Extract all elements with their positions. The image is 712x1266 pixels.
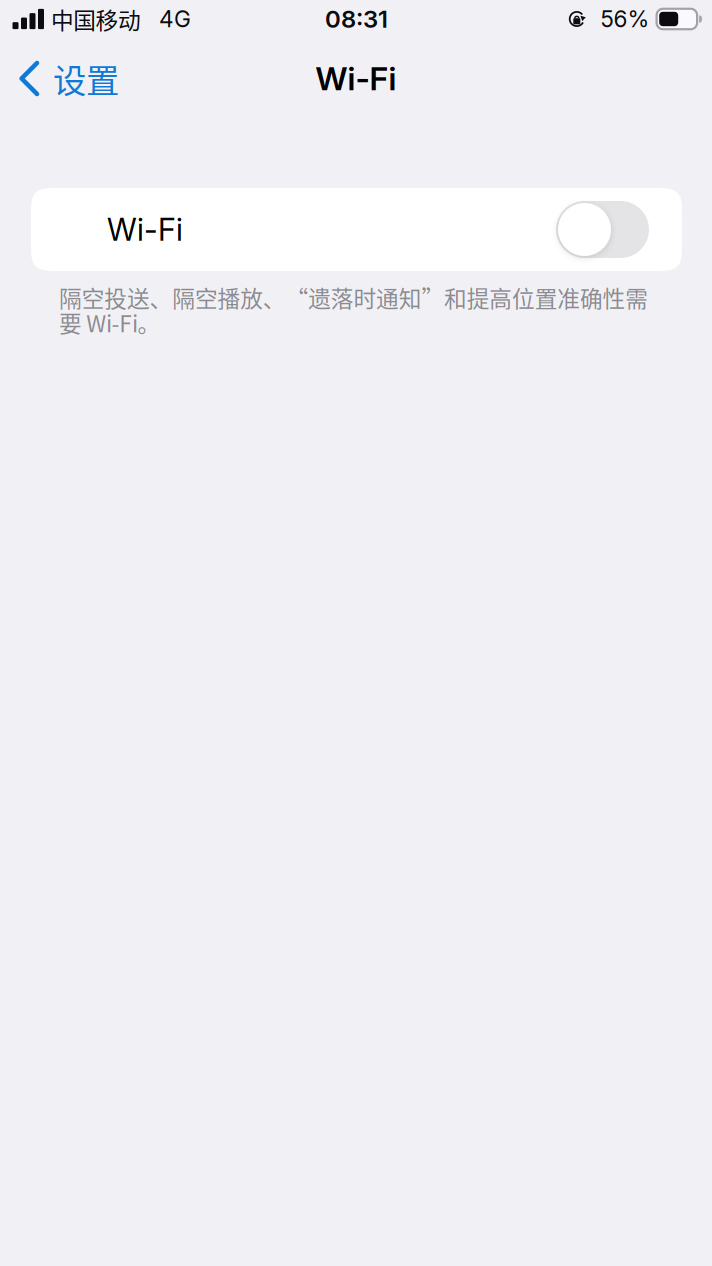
staticText: 56% — [601, 5, 650, 33]
staticText: 隔空投送、隔空播放、“遗落时通知”和提高位置准确性需要 Wi-Fi。 — [59, 285, 648, 335]
staticText: 4G — [159, 5, 191, 33]
button[interactable]: 设置 — [0, 50, 131, 106]
staticText: 设置 — [53, 54, 119, 103]
staticText: Wi-Fi — [107, 211, 183, 248]
button[interactable]: 关闭 — [31, 188, 682, 271]
staticText: Wi-Fi — [315, 59, 396, 98]
staticText: 08:31 — [325, 4, 388, 33]
staticText: 中国移动 — [51, 3, 141, 35]
